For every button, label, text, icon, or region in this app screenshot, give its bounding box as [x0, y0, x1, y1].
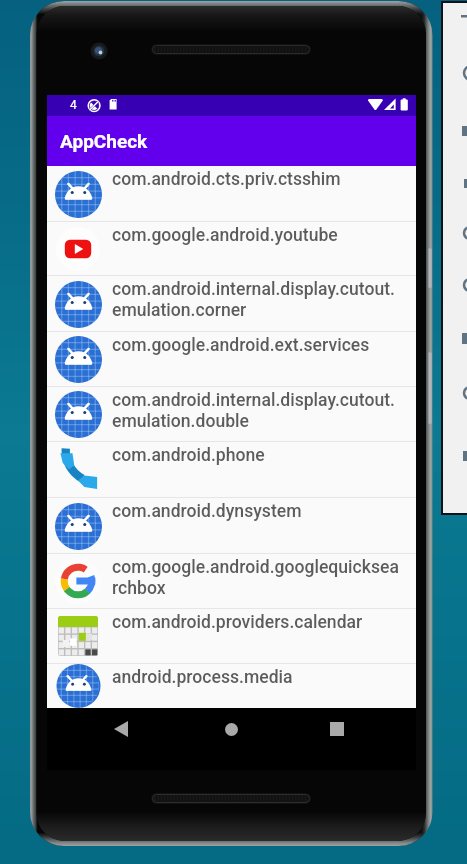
- staticText: com.android.internal.display.cutout.: [112, 279, 395, 300]
- staticText: com.google.android.ext.services: [112, 335, 370, 356]
- button[interactable]: Back: [102, 715, 140, 743]
- staticText: com.google.android.youtube: [112, 225, 338, 246]
- staticText: com.android.dynsystem: [112, 501, 302, 522]
- staticText: com.android.providers.calendar: [112, 612, 363, 633]
- button[interactable]: com.google.android.googlequicksea: [47, 554, 416, 608]
- button[interactable]: com.android.providers.calendar: [47, 609, 416, 663]
- staticText: 4: [70, 98, 77, 112]
- staticText: emulation.double: [112, 411, 249, 432]
- staticText: emulation.corner: [112, 300, 247, 321]
- button[interactable]: com.android.phone: [47, 442, 416, 497]
- button[interactable]: com.android.internal.display.cutout.: [47, 276, 416, 331]
- staticText: rchbox: [112, 578, 166, 599]
- button[interactable]: com.android.internal.display.cutout.: [47, 387, 416, 441]
- button[interactable]: AppCheck: [47, 116, 416, 166]
- button[interactable]: com.android.dynsystem: [47, 498, 416, 553]
- staticText: com.android.phone: [112, 445, 265, 466]
- staticText: com.android.internal.display.cutout.: [112, 390, 395, 411]
- button[interactable]: Recent apps: [318, 715, 356, 743]
- button[interactable]: Home: [212, 715, 250, 743]
- staticText: android.process.media: [112, 667, 293, 688]
- staticText: com.android.cts.priv.ctsshim: [112, 169, 341, 190]
- button[interactable]: android.process.media: [47, 664, 416, 708]
- staticText: com.google.android.googlequicksea: [112, 557, 399, 578]
- button[interactable]: com.google.android.youtube: [47, 222, 416, 275]
- button[interactable]: com.android.cts.priv.ctsshim: [47, 166, 416, 221]
- button[interactable]: com.google.android.ext.services: [47, 332, 416, 386]
- staticText: AppCheck: [60, 130, 148, 152]
